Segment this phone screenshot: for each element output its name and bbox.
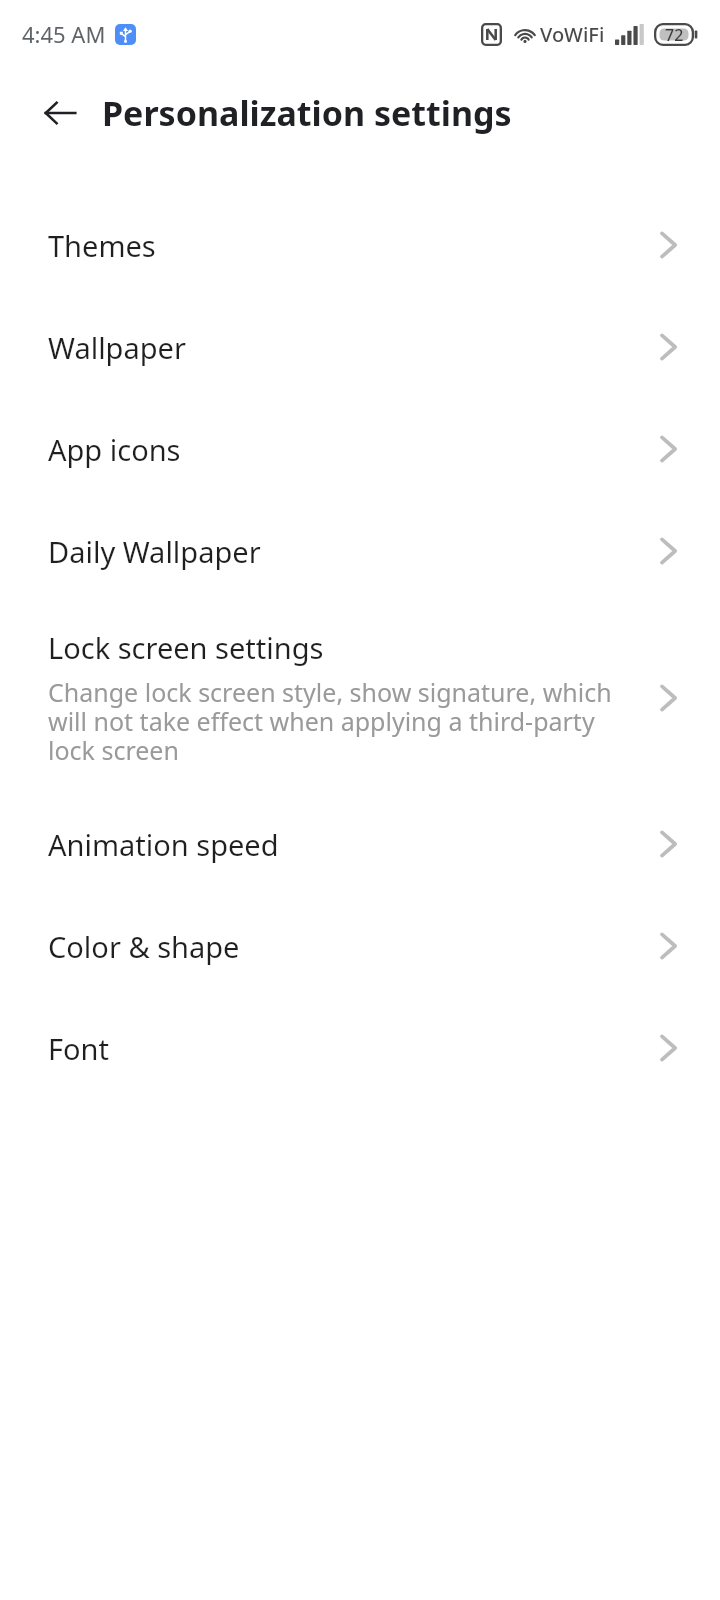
staticText: Lock screen settings — [48, 628, 324, 667]
staticText: Color & shape — [48, 927, 658, 966]
staticText: 4:45 AM — [22, 19, 106, 49]
button[interactable]: Themes — [0, 194, 720, 296]
staticText: App icons — [48, 430, 658, 469]
staticText: Themes — [48, 226, 658, 265]
staticText: Wallpaper — [48, 328, 658, 367]
staticText: 72 — [665, 24, 684, 46]
staticText: Font — [48, 1029, 658, 1068]
button[interactable]: Animation speed — [0, 793, 720, 895]
button[interactable]: Lock screen settings — [0, 602, 720, 793]
staticText: Daily Wallpaper — [48, 532, 658, 571]
button[interactable]: Daily Wallpaper — [0, 500, 720, 602]
button[interactable]: Wallpaper — [0, 296, 720, 398]
button[interactable]: Back — [32, 85, 88, 141]
staticText: VoWiFi — [540, 21, 605, 48]
button[interactable]: Font — [0, 997, 720, 1099]
button[interactable]: Color & shape — [0, 895, 720, 997]
staticText: Personalization settings — [102, 90, 512, 136]
staticText: Change lock screen style, show signature… — [48, 675, 638, 767]
button[interactable]: App icons — [0, 398, 720, 500]
staticText: Animation speed — [48, 825, 658, 864]
